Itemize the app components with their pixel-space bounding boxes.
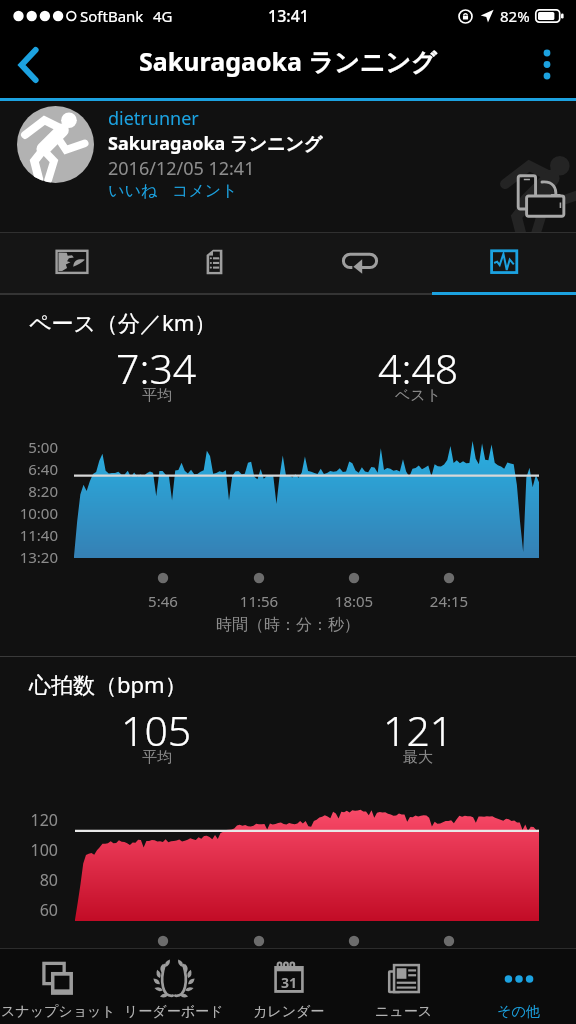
staticText: ベスト [395, 386, 442, 405]
staticText: 11:56 [219, 591, 299, 611]
staticText: ニュース [375, 1003, 432, 1021]
button[interactable]: Map [0, 232, 144, 295]
button[interactable]: スナップショット [0, 948, 116, 1024]
staticText: 82% [500, 6, 530, 26]
staticText: 10:00 [0, 503, 58, 523]
staticText: 80 [0, 869, 58, 891]
staticText: 13:41 [268, 5, 309, 27]
staticText: 5:46 [123, 591, 203, 611]
button[interactable]: Rotate screen [514, 171, 570, 221]
button[interactable]: 31 [231, 948, 346, 1024]
staticText: 31 [281, 973, 298, 992]
staticText: ペース（分／km） [29, 307, 217, 337]
staticText: Sakuragaoka ランニング [139, 44, 437, 78]
staticText: 13:20 [0, 547, 58, 567]
staticText: 105 [121, 702, 192, 758]
staticText: 120 [0, 809, 58, 831]
button[interactable]: Graphs [432, 232, 576, 295]
button[interactable]: Details [144, 232, 288, 295]
staticText: 4G [153, 6, 173, 26]
staticText: 60 [0, 899, 58, 921]
staticText: リーダーボード [124, 1003, 224, 1021]
button[interactable]: いいね [108, 181, 158, 201]
staticText: 心拍数（bpm） [29, 669, 187, 699]
staticText: Sakuragaoka ランニング [108, 131, 323, 156]
staticText: 5:00 [0, 437, 58, 457]
staticText: 18:05 [314, 591, 394, 611]
button[interactable]: その他 [461, 948, 576, 1024]
staticText: 100 [0, 839, 58, 861]
button[interactable]: Back [0, 32, 58, 98]
staticText: 4:48 [378, 340, 459, 396]
staticText: 7:34 [116, 340, 197, 396]
staticText: 11:40 [0, 525, 58, 545]
button[interactable]: More options [518, 32, 576, 98]
button[interactable]: ニュース [346, 948, 461, 1024]
staticText: 平均 [142, 748, 172, 767]
staticText: 最大 [403, 748, 433, 767]
staticText: 2016/12/05 12:41 [108, 156, 255, 181]
staticText: 6:40 [0, 459, 58, 479]
staticText: 8:20 [0, 481, 58, 501]
staticText: カレンダー [253, 1003, 325, 1021]
staticText: dietrunner [108, 106, 199, 131]
staticText: 平均 [142, 386, 172, 405]
button[interactable]: コメント [172, 181, 238, 201]
button[interactable]: Laps [288, 232, 432, 295]
staticText: スナップショット [1, 1003, 116, 1021]
staticText: 24:15 [409, 591, 489, 611]
button[interactable]: リーダーボード [116, 948, 231, 1024]
staticText: その他 [497, 1003, 540, 1021]
staticText: 時間（時：分：秒） [0, 615, 576, 635]
staticText: SoftBank [80, 6, 144, 26]
staticText: 121 [383, 702, 454, 758]
